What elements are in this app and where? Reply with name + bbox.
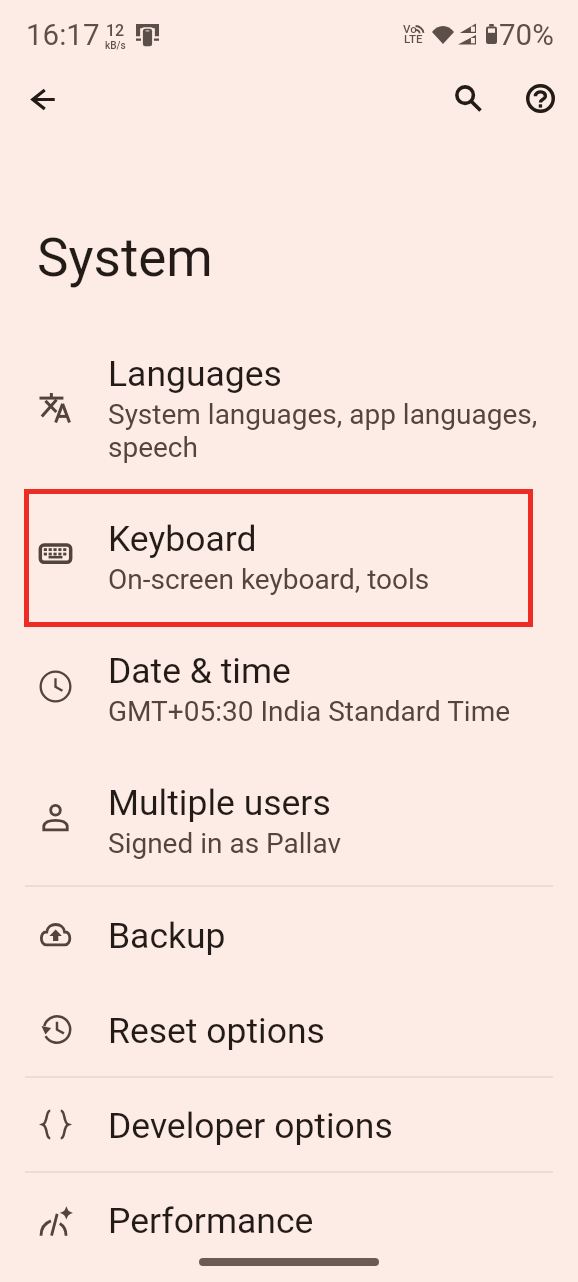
- button[interactable]: Search: [444, 74, 492, 122]
- staticText: On-screen keyboard, tools: [108, 563, 430, 596]
- button[interactable]: Developer options: [0, 1077, 578, 1172]
- staticText: Vo: [403, 22, 417, 35]
- button[interactable]: Back: [19, 75, 67, 123]
- staticText: Backup: [108, 915, 226, 957]
- staticText: LTE: [404, 32, 423, 45]
- staticText: 16:17: [26, 18, 100, 53]
- staticText: Keyboard: [108, 518, 257, 560]
- button[interactable]: Keyboard: [0, 489, 578, 620]
- staticText: System: [37, 227, 213, 289]
- button[interactable]: Multiple users: [0, 753, 578, 884]
- button[interactable]: Performance: [0, 1172, 578, 1267]
- staticText: Performance: [108, 1200, 314, 1242]
- button[interactable]: Backup: [0, 887, 578, 982]
- staticText: 12: [106, 21, 125, 40]
- staticText: Signed in as Pallav: [108, 827, 341, 860]
- staticText: System languages, app languages,: [108, 398, 538, 431]
- button[interactable]: Reset options: [0, 982, 578, 1077]
- staticText: Reset options: [108, 1010, 325, 1052]
- button[interactable]: Help: [516, 74, 564, 122]
- button[interactable]: Languages: [0, 324, 578, 488]
- staticText: Date & time: [108, 650, 291, 692]
- staticText: GMT+05:30 India Standard Time: [108, 695, 511, 728]
- staticText: Multiple users: [108, 782, 331, 824]
- staticText: Languages: [108, 353, 282, 395]
- button[interactable]: Date & time: [0, 621, 578, 752]
- staticText: 70%: [499, 18, 554, 53]
- staticText: speech: [108, 431, 198, 464]
- staticText: Developer options: [108, 1105, 393, 1147]
- staticText: kB/s: [105, 40, 126, 52]
